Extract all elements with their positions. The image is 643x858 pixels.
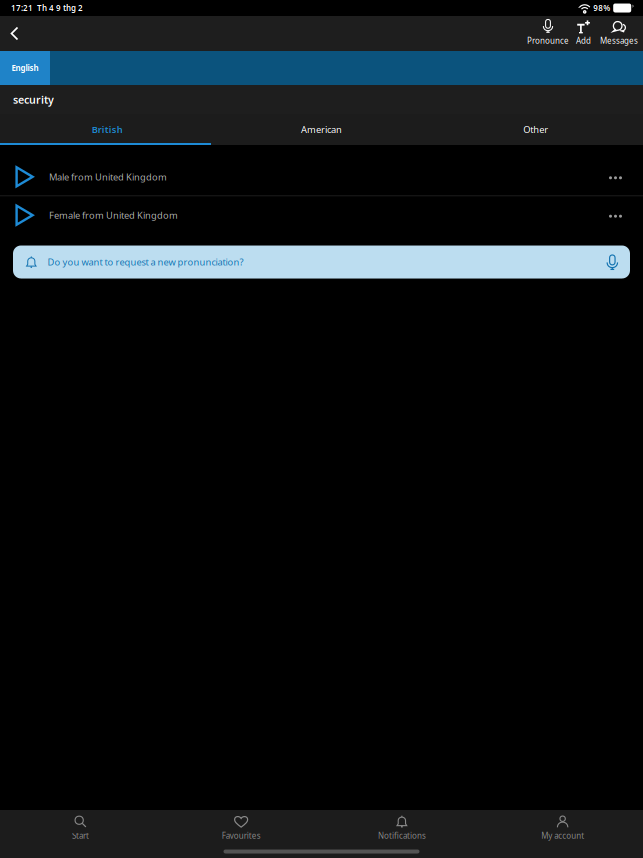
staticText: Start [72,830,89,841]
button[interactable]: Do you want to request a new pronunciati… [13,245,630,278]
button[interactable]: Favourites [161,810,322,846]
button[interactable]: Pronounce [527,18,569,46]
staticText: Add [576,35,591,46]
button[interactable]: Male from United Kingdom [0,158,643,196]
staticText: Do you want to request a new pronunciati… [48,256,244,268]
button[interactable]: Messages [600,20,638,46]
staticText: Favourites [222,830,261,841]
staticText: 98% [593,3,610,13]
staticText: British [92,123,123,136]
button[interactable]: English [0,51,50,85]
staticText: Pronounce [527,35,569,46]
button[interactable]: British [0,114,214,145]
staticText: English [11,63,38,73]
button[interactable]: More options [609,169,622,185]
staticText: Notifications [378,830,426,841]
staticText: Other [523,123,548,136]
button[interactable]: Notifications [321,810,482,846]
button[interactable]: Other [429,114,643,145]
button[interactable]: My account [482,810,643,846]
staticText: My account [541,830,584,841]
button[interactable]: Add [576,20,591,46]
button[interactable]: Start [0,810,161,846]
staticText: security [13,92,54,107]
staticText: Female from United Kingdom [49,209,178,221]
staticText: Messages [600,35,638,46]
button[interactable]: Back [0,16,34,51]
staticText: 17:21 Th 4 9 thg 2 [11,3,83,13]
button[interactable]: More options [609,207,622,223]
button[interactable]: Female from United Kingdom [0,196,643,234]
staticText: American [301,123,342,136]
staticText: Male from United Kingdom [49,171,167,183]
button[interactable]: American [214,114,429,145]
